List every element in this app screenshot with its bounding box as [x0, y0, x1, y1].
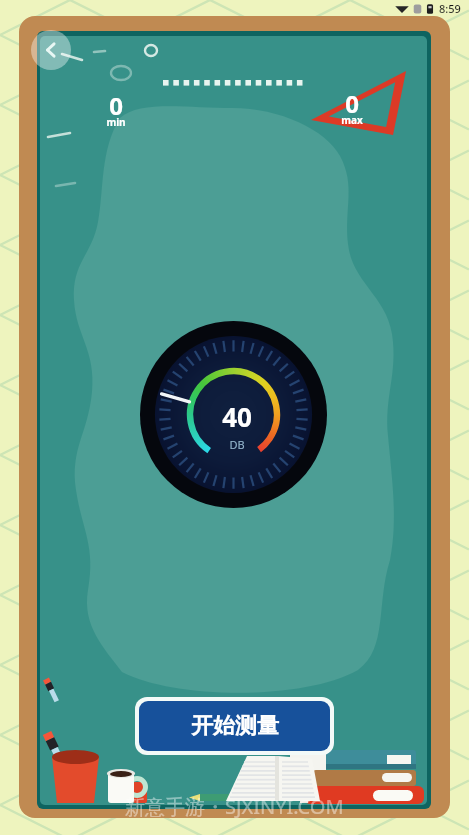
button[interactable]: Back [31, 30, 71, 70]
staticText: DB [204, 437, 270, 452]
staticText: 40 [204, 399, 270, 434]
staticText: 开始测量 [191, 712, 279, 740]
staticText: 新意手游・SJXINYI.COM [125, 793, 344, 820]
button[interactable]: 开始测量 [139, 701, 330, 751]
staticText: 0 [339, 87, 365, 120]
staticText: max [339, 113, 365, 127]
staticText: min [104, 115, 128, 129]
staticText: 8:59 [439, 1, 461, 16]
staticText: 0 [104, 89, 128, 122]
